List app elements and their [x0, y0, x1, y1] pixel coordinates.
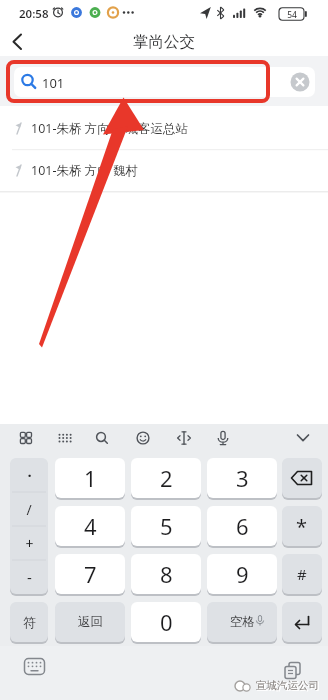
button[interactable]: 1 — [55, 458, 125, 498]
staticText: 5 — [160, 511, 173, 541]
button[interactable]: # — [282, 554, 322, 594]
staticText: 宣城汽运公司 — [257, 680, 320, 693]
button[interactable]: 符 — [10, 602, 48, 642]
button[interactable]: 空格 — [207, 602, 277, 642]
staticText: 2 — [160, 463, 173, 493]
button[interactable]: 9 — [207, 554, 277, 594]
staticText: 符 — [23, 614, 36, 630]
staticText: / — [26, 500, 32, 519]
button[interactable]: * — [282, 506, 322, 546]
staticText: 9 — [236, 559, 249, 589]
staticText: 4 — [84, 511, 97, 541]
button[interactable]: 7 — [55, 554, 125, 594]
staticText: 掌尚公交 — [133, 32, 195, 52]
button[interactable] — [0, 106, 328, 149]
staticText: 3 — [236, 463, 249, 493]
staticText: 20:58 — [19, 6, 49, 22]
button[interactable] — [14, 67, 315, 97]
button[interactable]: 8 — [131, 554, 201, 594]
button[interactable] — [10, 458, 48, 594]
button[interactable]: 6 — [207, 506, 277, 546]
button[interactable]: 4 — [55, 506, 125, 546]
staticText: + — [25, 534, 34, 553]
staticText: 101-朱桥 方向 宣城客运总站 — [31, 120, 188, 137]
button[interactable]: 3 — [207, 458, 277, 498]
staticText: 101-朱桥 方向 魏村 — [31, 162, 138, 179]
staticText: 宣城汽运公司 — [256, 679, 319, 692]
button[interactable]: 返回 — [55, 602, 125, 642]
staticText: 1 — [84, 463, 97, 493]
button[interactable] — [0, 28, 44, 56]
button[interactable] — [22, 656, 48, 678]
staticText: 0 — [160, 607, 173, 637]
staticText: 6 — [236, 511, 249, 541]
staticText: 8 — [160, 559, 173, 589]
button[interactable] — [282, 602, 322, 642]
button[interactable] — [281, 660, 305, 684]
staticText: * — [296, 513, 308, 540]
button[interactable]: 2 — [131, 458, 201, 498]
button[interactable]: 0 — [131, 602, 201, 642]
button[interactable]: 5 — [131, 506, 201, 546]
staticText: 返回 — [78, 614, 103, 630]
staticText: - — [27, 567, 32, 587]
button[interactable] — [282, 458, 322, 498]
staticText: 101 — [42, 74, 65, 92]
staticText: 54 — [287, 9, 297, 21]
button[interactable] — [0, 149, 328, 191]
staticText: # — [297, 564, 307, 584]
staticText: · — [27, 465, 32, 485]
staticText: 空格 — [230, 614, 255, 630]
staticText: 7 — [84, 559, 97, 589]
